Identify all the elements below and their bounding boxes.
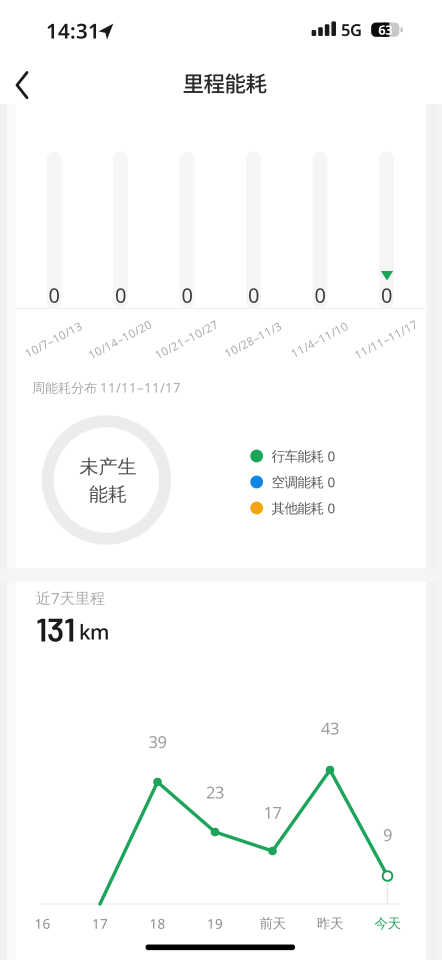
staticText: 11/11–11/17 — [351, 332, 421, 347]
staticText: 5G — [341, 18, 362, 41]
staticText: 今天 — [374, 915, 400, 932]
staticText: km — [79, 617, 109, 645]
staticText: 行车能耗 0 — [271, 447, 335, 465]
staticText: 0 — [248, 281, 259, 309]
staticText: 其他能耗 0 — [271, 499, 335, 517]
staticText: 9 — [383, 823, 392, 846]
staticText: 能耗 — [89, 482, 127, 506]
staticText: 63 — [378, 21, 392, 38]
staticText: 39 — [148, 730, 166, 753]
staticText: 10/14–10/20 — [85, 332, 155, 347]
staticText: 昨天 — [317, 915, 343, 932]
staticText: 17 — [92, 914, 108, 933]
staticText: 131 — [36, 609, 75, 648]
staticText: 14:31 — [46, 16, 100, 44]
staticText: 0 — [381, 281, 392, 309]
staticText: 周能耗分布 11/11–11/17 — [32, 378, 181, 396]
staticText: 0 — [181, 281, 192, 309]
staticText: 11/4–11/10 — [288, 332, 351, 347]
button[interactable]: Back — [0, 63, 44, 107]
staticText: 0 — [314, 281, 325, 309]
staticText: 里程能耗 — [182, 67, 266, 98]
staticText: 空调能耗 0 — [271, 473, 335, 491]
staticText: 18 — [149, 914, 165, 933]
staticText: 10/7–10/13 — [22, 332, 85, 347]
staticText: 前天 — [259, 915, 285, 932]
staticText: 10/21–10/27 — [151, 332, 221, 347]
staticText: 43 — [321, 717, 339, 739]
staticText: 10/28–11/3 — [221, 332, 284, 347]
staticText: 17 — [263, 801, 281, 824]
staticText: 16 — [34, 914, 50, 933]
staticText: 近7天里程 — [36, 588, 105, 608]
staticText: 23 — [206, 781, 224, 803]
staticText: 0 — [48, 281, 59, 309]
staticText: 0 — [115, 281, 126, 309]
staticText: 未产生 — [79, 455, 136, 479]
staticText: 19 — [207, 914, 223, 933]
